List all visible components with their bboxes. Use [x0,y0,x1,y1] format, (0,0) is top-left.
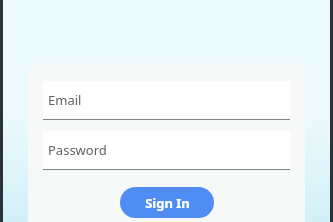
staticText: Email [48,91,82,109]
staticText: Password [48,141,107,159]
button[interactable]: Password [43,131,290,170]
button[interactable]: Email [43,81,290,120]
button[interactable]: Sign In [120,187,214,218]
staticText: Sign In [145,194,190,212]
